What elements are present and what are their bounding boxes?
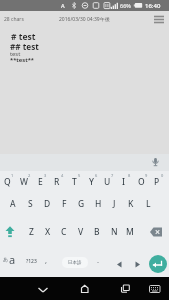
button[interactable]: ?123: [21, 254, 41, 268]
button[interactable]: [33, 279, 53, 298]
button[interactable]: [113, 257, 126, 272]
staticText: K: [128, 198, 134, 210]
staticText: I: [122, 176, 126, 188]
button[interactable]: Z: [23, 224, 39, 240]
staticText: E: [38, 176, 43, 188]
staticText: 日本語: [68, 260, 82, 266]
button[interactable]: R: [49, 174, 65, 190]
staticText: 7: [111, 173, 114, 178]
button[interactable]: F: [56, 196, 72, 212]
staticText: # test: [11, 31, 36, 43]
staticText: ?123: [26, 258, 37, 265]
staticText: A: [10, 198, 16, 210]
button[interactable]: W: [16, 174, 32, 190]
button[interactable]: [75, 279, 95, 298]
staticText: P: [154, 176, 160, 188]
button[interactable]: [145, 279, 165, 298]
staticText: H: [95, 198, 102, 210]
button[interactable]: [149, 255, 167, 273]
staticText: W: [20, 176, 28, 188]
button[interactable]: D: [39, 196, 55, 212]
button[interactable]: V: [73, 224, 89, 240]
button[interactable]: O: [133, 174, 149, 190]
staticText: L: [146, 198, 151, 210]
staticText: a: [9, 252, 16, 267]
staticText: B: [94, 226, 100, 238]
staticText: S: [28, 198, 33, 210]
staticText: T: [72, 176, 77, 188]
button[interactable]: K: [123, 196, 139, 212]
button[interactable]: [150, 13, 168, 27]
staticText: 1: [11, 173, 14, 178]
button[interactable]: 日本語: [62, 257, 88, 268]
staticText: .: [97, 255, 100, 265]
staticText: F: [62, 198, 67, 210]
staticText: Z: [29, 226, 34, 238]
staticText: 6: [95, 173, 98, 178]
button[interactable]: .: [93, 253, 103, 267]
staticText: 5: [78, 173, 81, 178]
staticText: 3: [44, 173, 47, 178]
staticText: **test**: [10, 56, 34, 64]
button[interactable]: C: [56, 224, 72, 240]
button[interactable]: B: [89, 224, 105, 240]
staticText: A: [61, 2, 65, 9]
button[interactable]: E: [32, 174, 48, 190]
button[interactable]: H: [90, 196, 106, 212]
button[interactable]: X: [40, 224, 56, 240]
staticText: X: [45, 226, 51, 238]
staticText: M: [126, 226, 134, 238]
staticText: 16:40: [145, 2, 161, 10]
button[interactable]: [2, 224, 18, 240]
staticText: R: [54, 176, 60, 188]
button[interactable]: Q: [0, 174, 15, 190]
button[interactable]: [147, 224, 165, 240]
button[interactable]: [148, 155, 163, 170]
staticText: 2016/03/30 04:39午後: [59, 16, 110, 23]
button[interactable]: N: [106, 224, 122, 240]
staticText: 9: [145, 173, 148, 178]
staticText: V: [78, 226, 84, 238]
staticText: 28 chars: [4, 16, 24, 23]
staticText: G: [78, 198, 85, 210]
staticText: 0: [161, 173, 164, 178]
staticText: Y: [89, 176, 94, 188]
staticText: Q: [4, 176, 11, 188]
staticText: 8: [128, 173, 131, 178]
staticText: U: [104, 176, 111, 188]
button[interactable]: T: [66, 174, 82, 190]
button[interactable]: S: [22, 196, 38, 212]
button[interactable]: I: [116, 174, 132, 190]
button[interactable]: G: [73, 196, 89, 212]
button[interactable]: [131, 257, 144, 272]
staticText: O: [138, 176, 145, 188]
staticText: J: [113, 198, 116, 210]
button[interactable]: A: [5, 196, 21, 212]
button[interactable]: P: [149, 174, 165, 190]
button[interactable]: M: [122, 224, 138, 240]
staticText: 4: [61, 173, 64, 178]
button[interactable]: # test: [0, 28, 169, 154]
button[interactable]: U: [99, 174, 115, 190]
staticText: test: [10, 50, 21, 58]
button[interactable]: [0, 250, 20, 272]
staticText: 66%: [120, 2, 131, 9]
staticText: C: [61, 226, 67, 238]
staticText: ,: [45, 255, 48, 265]
button[interactable]: [116, 279, 136, 298]
button[interactable]: J: [106, 196, 122, 212]
staticText: N: [111, 226, 118, 238]
button[interactable]: ,: [41, 253, 51, 267]
staticText: ## test: [10, 41, 39, 52]
staticText: あ: [3, 256, 9, 262]
staticText: D: [44, 198, 51, 210]
button[interactable]: Y: [83, 174, 99, 190]
staticText: 2: [28, 173, 31, 178]
button[interactable]: L: [140, 196, 156, 212]
